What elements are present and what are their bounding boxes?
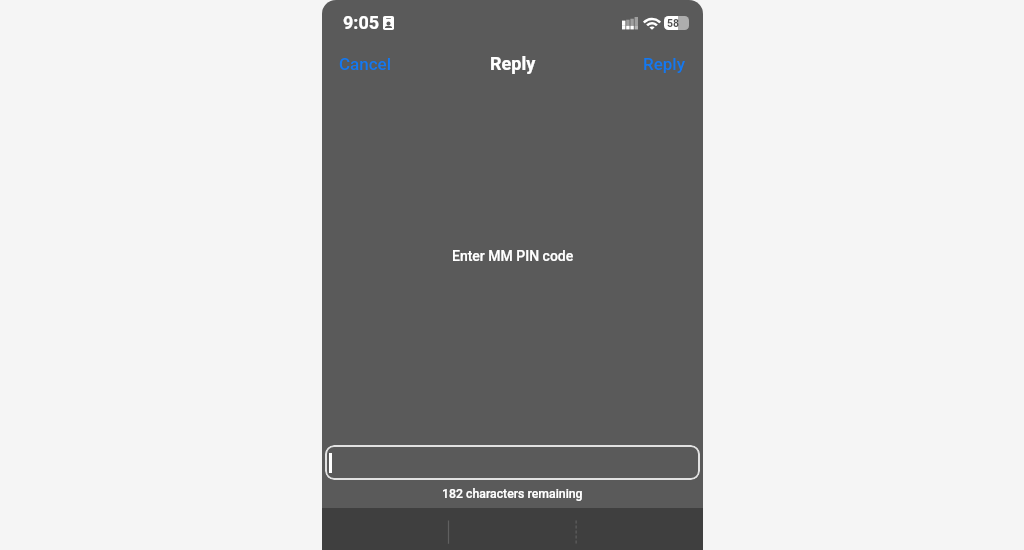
button[interactable]: PIN entry field: [325, 445, 700, 480]
other: Work profile: [383, 16, 394, 30]
staticText: Enter MM PIN code: [452, 248, 574, 264]
staticText: Reply: [643, 54, 686, 74]
staticText: 182 characters remaining: [442, 487, 583, 501]
staticText: 9:05: [343, 12, 380, 33]
staticText: 58: [667, 17, 680, 29]
other: Wi-Fi: [644, 16, 660, 30]
other: Mobile signal: [622, 16, 638, 30]
button[interactable]: Reply: [633, 50, 703, 78]
button[interactable]: Cancel: [322, 50, 402, 78]
staticText: Reply: [490, 53, 536, 74]
other: Battery 58 percent: [664, 16, 689, 30]
staticText: Cancel: [339, 54, 392, 74]
